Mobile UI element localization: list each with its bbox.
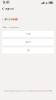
staticText: Solo	[26, 49, 29, 52]
button[interactable]: Manager	[10, 18, 18, 21]
staticText: I am a	[2, 18, 10, 21]
staticText: and	[39, 90, 42, 92]
staticText: Manager	[10, 18, 18, 21]
button[interactable]: Back	[0, 6, 5, 12]
staticText: Terms of Service	[26, 90, 39, 92]
button[interactable]: Privacy Policy	[42, 90, 52, 92]
button[interactable]: Agency	[2, 39, 54, 45]
staticText: Privacy Policy	[42, 90, 52, 92]
staticText: Sign Up	[5, 7, 13, 10]
staticText: By continuing, you agree to our	[3, 90, 26, 92]
staticText: 9:41	[3, 1, 9, 4]
staticText: Studio	[25, 33, 30, 35]
staticText: Select a workspace	[2, 26, 19, 28]
button[interactable]: Studio	[2, 31, 54, 37]
staticText: Agency	[25, 41, 31, 43]
button[interactable]: Terms of Service	[26, 90, 39, 92]
button[interactable]: Solo	[2, 48, 54, 54]
